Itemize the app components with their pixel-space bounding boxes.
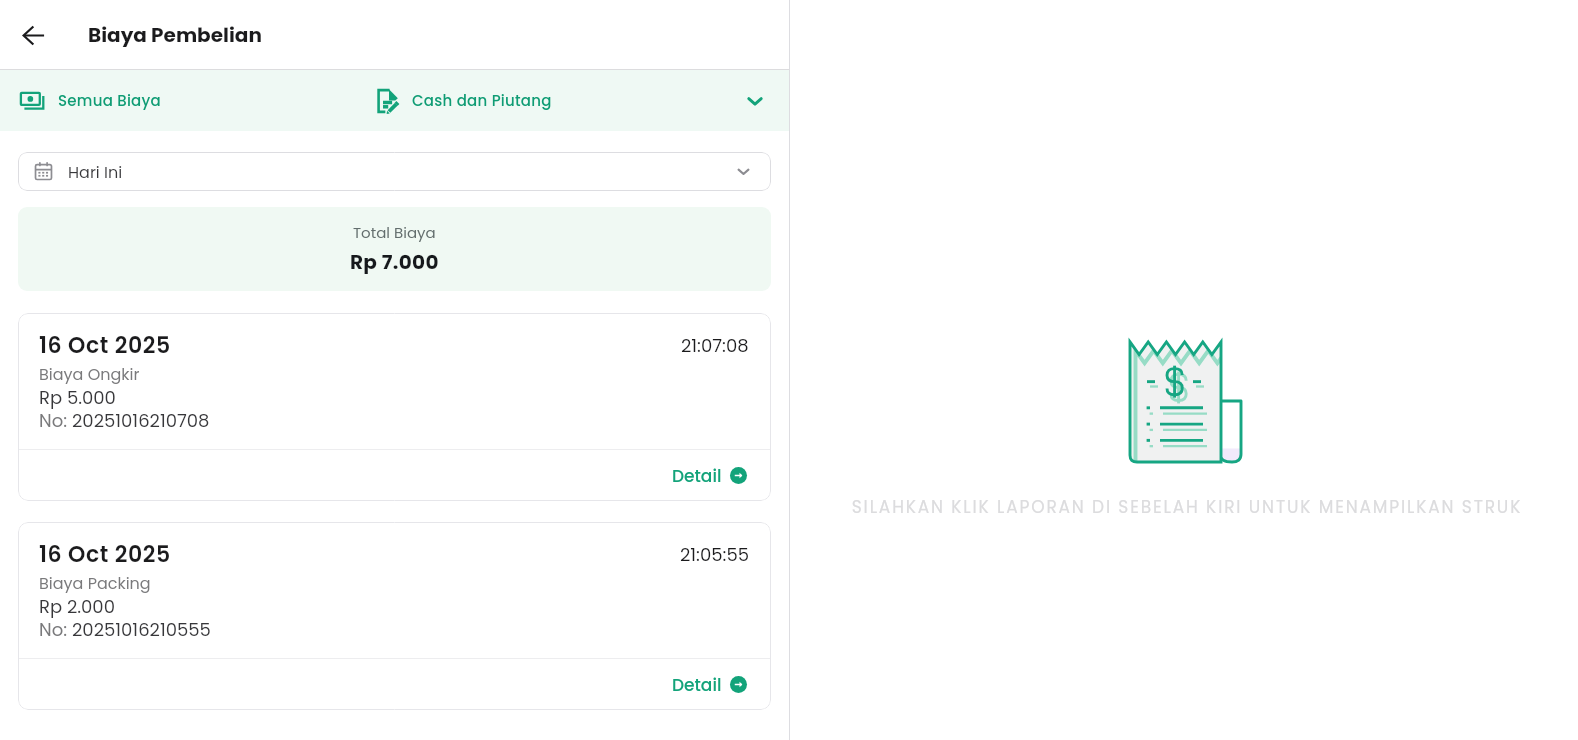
staticText: Rp 2.000	[39, 594, 115, 619]
staticText: Semua Biaya	[58, 90, 161, 111]
button[interactable]: Expand filters	[738, 84, 772, 118]
staticText: Detail	[672, 464, 722, 488]
staticText: Biaya Pembelian	[88, 21, 262, 49]
staticText: 20251016210708	[72, 408, 210, 433]
staticText: 16 Oct 2025	[39, 330, 171, 361]
button[interactable]: Back	[11, 13, 55, 57]
button[interactable]: Cash dan Piutang	[376, 70, 738, 131]
staticText: Detail	[672, 673, 722, 697]
staticText: Rp 7.000	[350, 248, 439, 276]
staticText: Hari Ini	[68, 161, 123, 183]
staticText: Biaya Ongkir	[39, 363, 140, 385]
staticText: Cash dan Piutang	[412, 90, 552, 111]
staticText: Biaya Packing	[39, 572, 151, 594]
button[interactable]: Detail	[18, 450, 771, 501]
staticText: 21:05:55	[680, 542, 749, 567]
button[interactable]: Semua Biaya	[0, 70, 376, 131]
staticText: 20251016210555	[72, 617, 211, 642]
button[interactable]: Hari Ini	[18, 152, 771, 191]
staticText: No:	[39, 617, 72, 642]
staticText: Total Biaya	[353, 222, 436, 243]
staticText: SILAHKAN KLIK LAPORAN DI SEBELAH KIRI UN…	[796, 495, 1578, 519]
staticText: No:	[39, 408, 72, 433]
staticText: Rp 5.000	[39, 385, 116, 410]
staticText: 16 Oct 2025	[39, 539, 171, 570]
staticText: 21:07:08	[681, 333, 749, 358]
button[interactable]: Detail	[18, 659, 771, 710]
